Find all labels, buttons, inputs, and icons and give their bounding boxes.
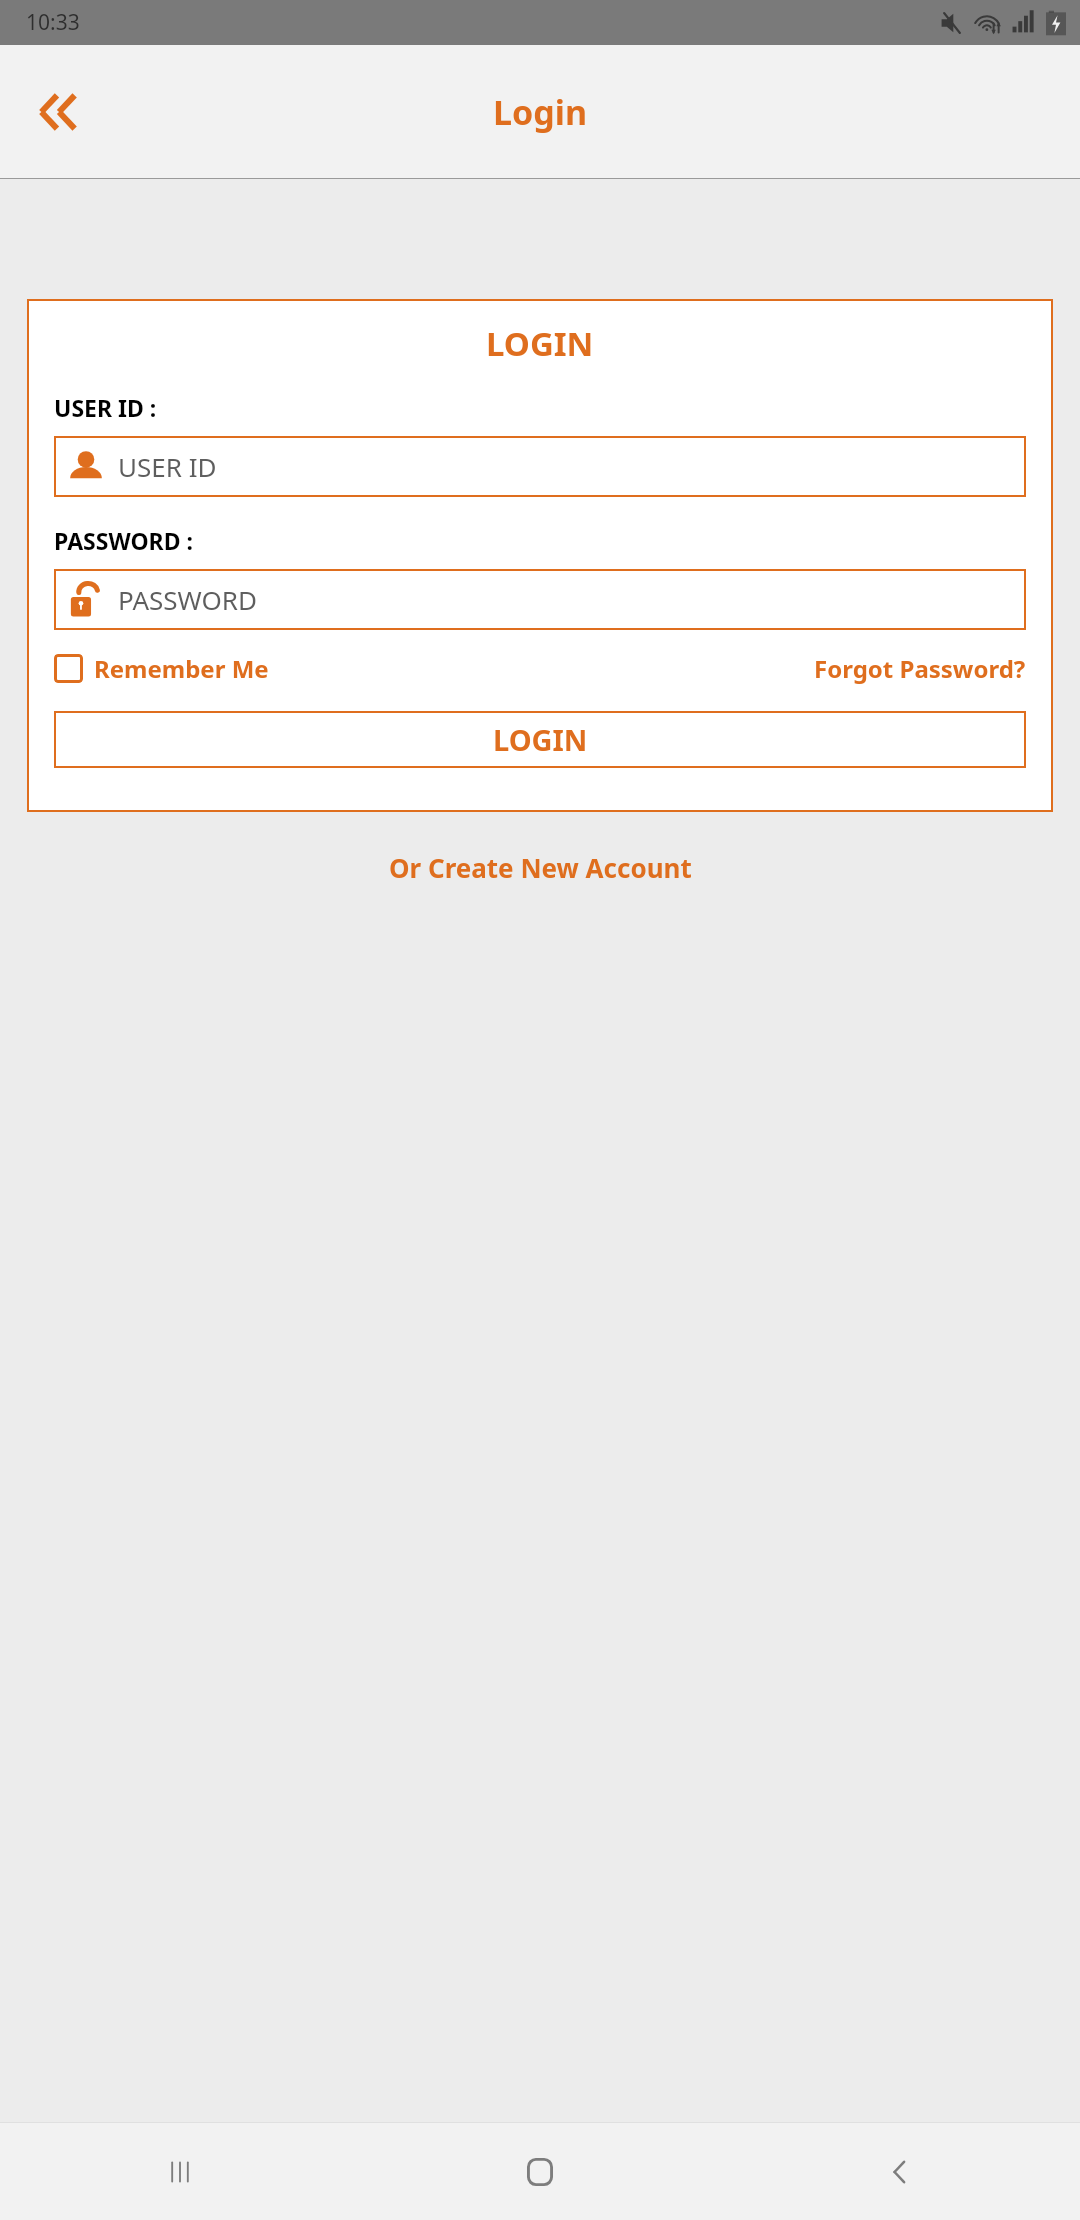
- staticText: USER ID :: [54, 392, 157, 423]
- staticText: LOGIN: [486, 321, 594, 366]
- button[interactable]: Back: [720, 2123, 1080, 2220]
- button[interactable]: PASSWORD: [54, 569, 1026, 630]
- button[interactable]: Back: [18, 72, 98, 152]
- staticText: Or Create New Account: [389, 850, 692, 885]
- button[interactable]: Recents: [0, 2123, 360, 2220]
- button[interactable]: Home: [360, 2123, 720, 2220]
- button[interactable]: Or Create New Account: [0, 850, 1080, 885]
- button[interactable]: Remember Me: [54, 652, 269, 685]
- staticText: Login: [493, 89, 588, 135]
- button[interactable]: USER ID: [54, 436, 1026, 497]
- staticText: USER ID: [118, 449, 217, 484]
- staticText: Remember Me: [94, 652, 269, 685]
- button[interactable]: Forgot Password?: [814, 652, 1026, 685]
- staticText: 10:33: [26, 8, 80, 37]
- staticText: PASSWORD :: [54, 525, 193, 556]
- button[interactable]: LOGIN: [54, 711, 1026, 768]
- staticText: PASSWORD: [118, 582, 257, 617]
- staticText: Forgot Password?: [814, 652, 1026, 685]
- staticText: LOGIN: [493, 720, 588, 759]
